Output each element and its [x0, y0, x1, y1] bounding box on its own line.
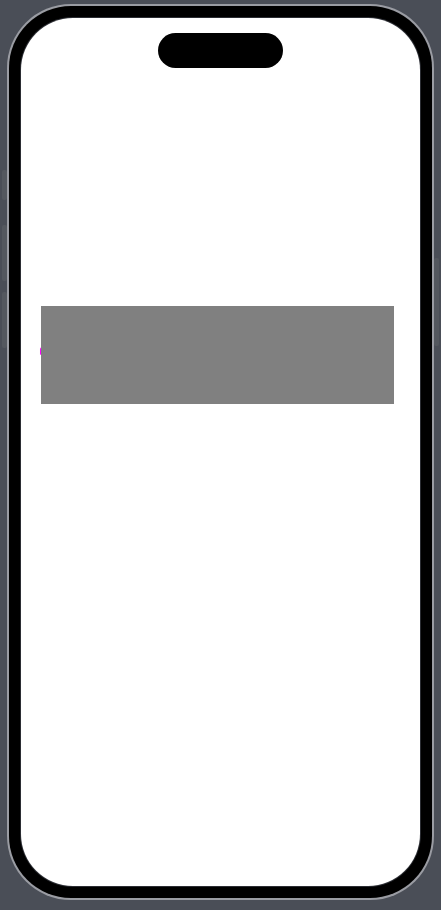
staticText: 450 [39, 301, 139, 380]
other: Dynamic Island [158, 33, 283, 68]
